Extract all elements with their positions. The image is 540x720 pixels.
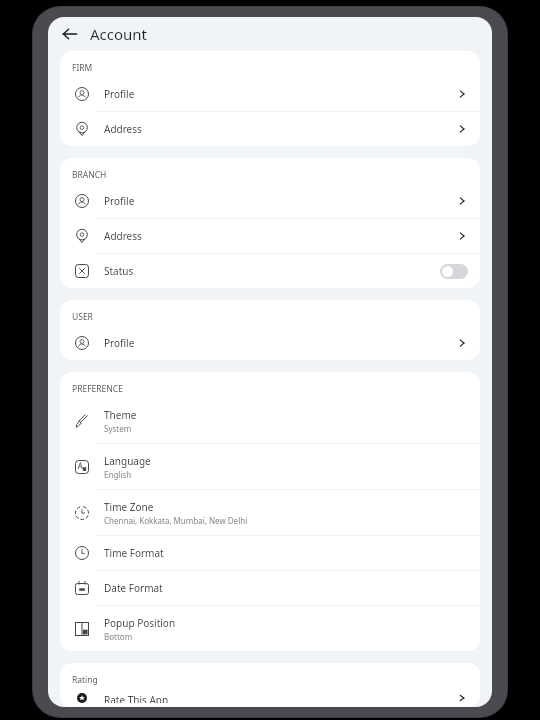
staticText: PREFERENCE [72, 383, 123, 395]
button[interactable]: Time Format [60, 536, 480, 570]
staticText: Popup Position [104, 616, 176, 630]
button[interactable]: Theme [60, 398, 480, 443]
staticText: Time Format [104, 546, 164, 560]
staticText: Language [104, 454, 151, 468]
button[interactable]: Address [60, 112, 480, 146]
button[interactable]: Time Zone [60, 490, 480, 535]
button[interactable]: Popup Position [60, 606, 480, 651]
staticText: BRANCH [72, 169, 107, 181]
staticText: Bottom [104, 631, 133, 642]
button[interactable]: Back [56, 20, 84, 48]
staticText: USER [72, 311, 93, 323]
staticText: Rating [72, 674, 98, 686]
staticText: Date Format [104, 581, 163, 595]
staticText: Time Zone [104, 500, 154, 514]
button[interactable]: Rate This App [60, 689, 480, 707]
staticText: Address [104, 229, 142, 243]
button[interactable]: Status [60, 254, 480, 288]
button[interactable]: Profile [60, 326, 480, 360]
staticText: Profile [104, 194, 135, 208]
button[interactable]: Profile [60, 184, 480, 218]
button[interactable]: Status toggle [440, 264, 468, 279]
staticText: Account [90, 24, 148, 44]
staticText: Theme [104, 408, 137, 422]
staticText: Address [104, 122, 142, 136]
staticText: Rate This App [104, 693, 169, 703]
button[interactable]: Address [60, 219, 480, 253]
staticText: Status [104, 264, 134, 278]
staticText: System [104, 423, 132, 434]
button[interactable]: Language [60, 444, 480, 489]
button[interactable]: Date Format [60, 571, 480, 605]
staticText: FIRM [72, 62, 93, 74]
button[interactable]: Profile [60, 77, 480, 111]
staticText: English [104, 469, 132, 480]
staticText: Profile [104, 336, 135, 350]
staticText: Chennai, Kokkata, Mumbai, New Delhi [104, 515, 248, 526]
staticText: Profile [104, 87, 135, 101]
